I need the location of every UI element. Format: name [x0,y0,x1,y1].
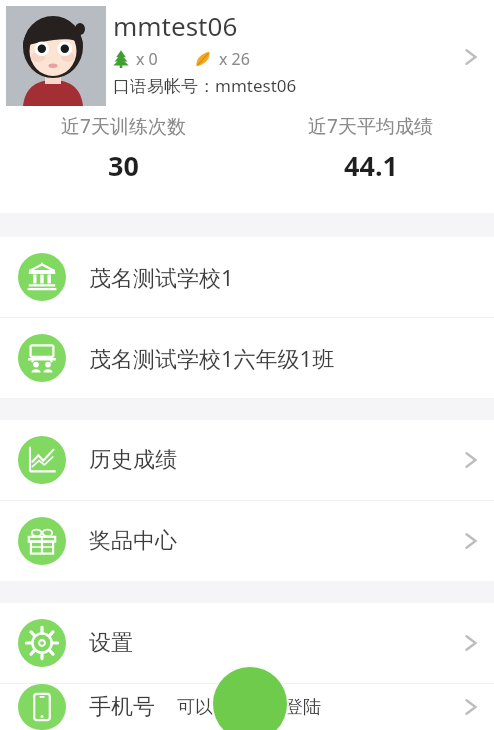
button[interactable]: 茂名测试学校1 [0,237,494,317]
staticText: x 26 [219,48,250,70]
button[interactable]: mmtest06 [0,0,494,113]
button[interactable]: 近7天训练次数 [0,113,247,184]
staticText: 手机号 [89,693,155,721]
button[interactable]: 手机号 [0,684,494,730]
staticText: 茂名测试学校1 [89,262,234,292]
staticText: 口语易帐号：mmtest06 [113,74,297,97]
button[interactable]: 茂名测试学校1六年级1班 [0,318,494,398]
staticText: 历史成绩 [89,446,177,474]
staticText: mmtest06 [113,8,238,43]
staticText: 近7天平均成绩 [308,113,433,139]
button[interactable]: 设置 [0,603,494,683]
staticText: 设置 [89,629,133,657]
staticText: 茂名测试学校1六年级1班 [89,343,335,373]
button[interactable]: 奖品中心 [0,501,494,581]
staticText: 30 [108,147,139,184]
staticText: 44.1 [344,147,398,184]
button[interactable]: Record [213,667,287,730]
staticText: 可以用手机号登陆 [177,696,321,719]
staticText: x 0 [136,48,158,70]
button[interactable]: 历史成绩 [0,420,494,500]
staticText: 奖品中心 [89,527,177,555]
button[interactable]: 近7天平均成绩 [247,113,494,184]
staticText: 近7天训练次数 [61,113,186,139]
